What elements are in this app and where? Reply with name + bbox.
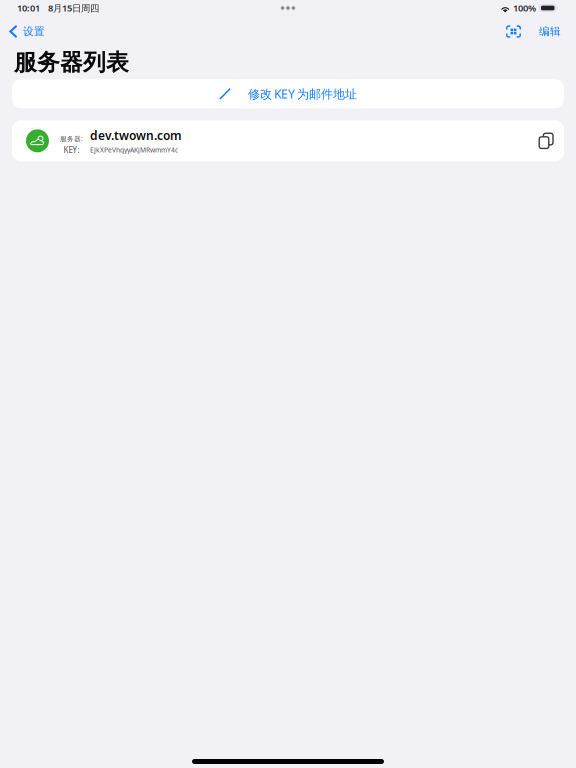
staticText: 服务器: — [60, 134, 83, 143]
button[interactable]: 扫一扫 — [496, 21, 531, 41]
button[interactable]: 修改 KEY 为邮件地址 — [12, 79, 564, 108]
staticText: 修改 KEY 为邮件地址 — [248, 86, 357, 102]
staticText: 10:01 — [17, 2, 40, 14]
button[interactable]: 设置 — [0, 21, 55, 41]
staticText: KEY: — [63, 145, 79, 155]
staticText: 100% — [513, 2, 536, 14]
button[interactable]: 服务器: — [12, 120, 564, 161]
staticText: dev.twown.com — [90, 127, 182, 143]
staticText: 设置 — [23, 25, 45, 38]
staticText: EJkXPeVhqyyAKjMRwmmY4c — [90, 145, 178, 154]
button[interactable]: 编辑 — [531, 21, 576, 41]
staticText: 8月15日周四 — [48, 2, 99, 14]
staticText: 服务器列表 — [14, 48, 129, 76]
staticText: 编辑 — [539, 25, 561, 38]
